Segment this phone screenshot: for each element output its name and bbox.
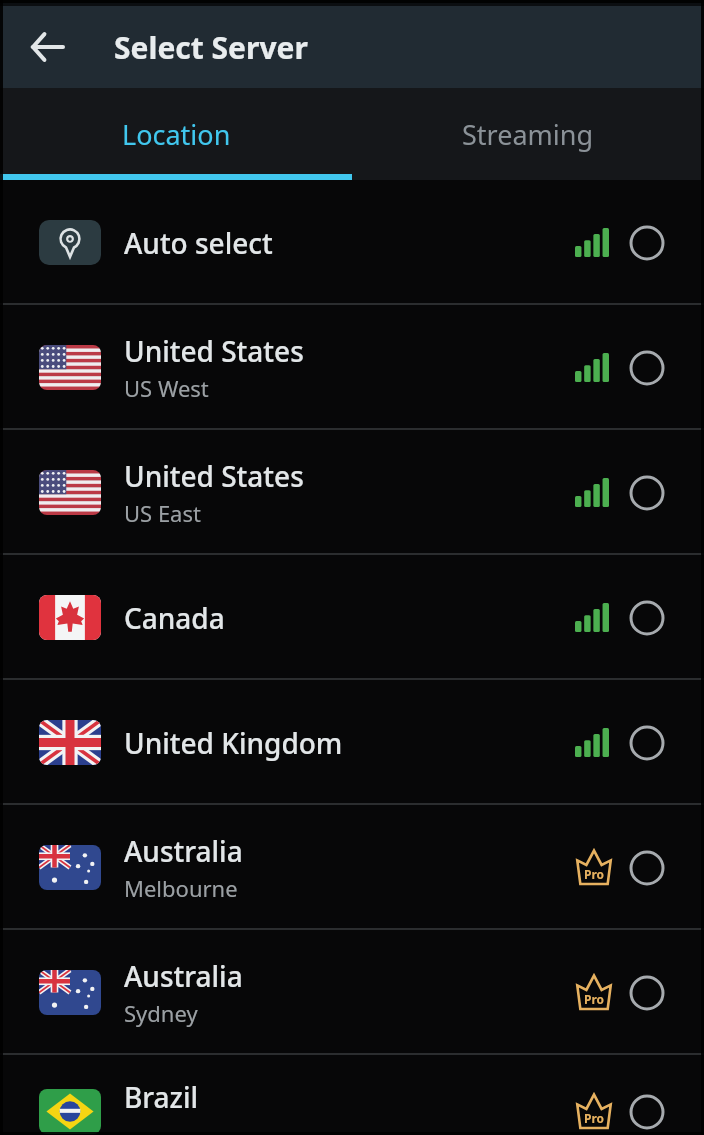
staticText: Auto select	[124, 224, 273, 262]
button[interactable]: Australia	[0, 930, 704, 1055]
staticText: Pro	[584, 991, 605, 1007]
staticText: Brazil	[124, 1078, 199, 1116]
button[interactable]: Auto select	[0, 180, 704, 305]
staticText: Melbourne	[124, 873, 238, 903]
staticText: US East	[124, 498, 201, 528]
staticText: United States	[124, 457, 304, 495]
staticText: Location	[122, 116, 231, 153]
staticText: Australia	[124, 832, 243, 870]
staticText: Pro	[584, 1110, 605, 1126]
staticText: Pro	[584, 866, 605, 882]
staticText: Australia	[124, 957, 243, 995]
staticText: Streaming	[462, 116, 594, 153]
staticText: United Kingdom	[124, 724, 343, 762]
staticText: Canada	[124, 599, 225, 637]
button[interactable]: United Kingdom	[0, 680, 704, 805]
button[interactable]: Brazil	[0, 1049, 704, 1135]
button[interactable]: Canada	[0, 555, 704, 680]
staticText: Sydney	[124, 998, 198, 1028]
button[interactable]: United States	[0, 430, 704, 555]
staticText: United States	[124, 332, 304, 370]
button[interactable]: Location	[0, 88, 352, 180]
staticText: Select Server	[114, 27, 308, 68]
staticText: US West	[124, 373, 209, 403]
button[interactable]: United States	[0, 305, 704, 430]
button[interactable]: Australia	[0, 805, 704, 930]
button[interactable]: Streaming	[352, 88, 704, 180]
button[interactable]	[31, 33, 65, 61]
